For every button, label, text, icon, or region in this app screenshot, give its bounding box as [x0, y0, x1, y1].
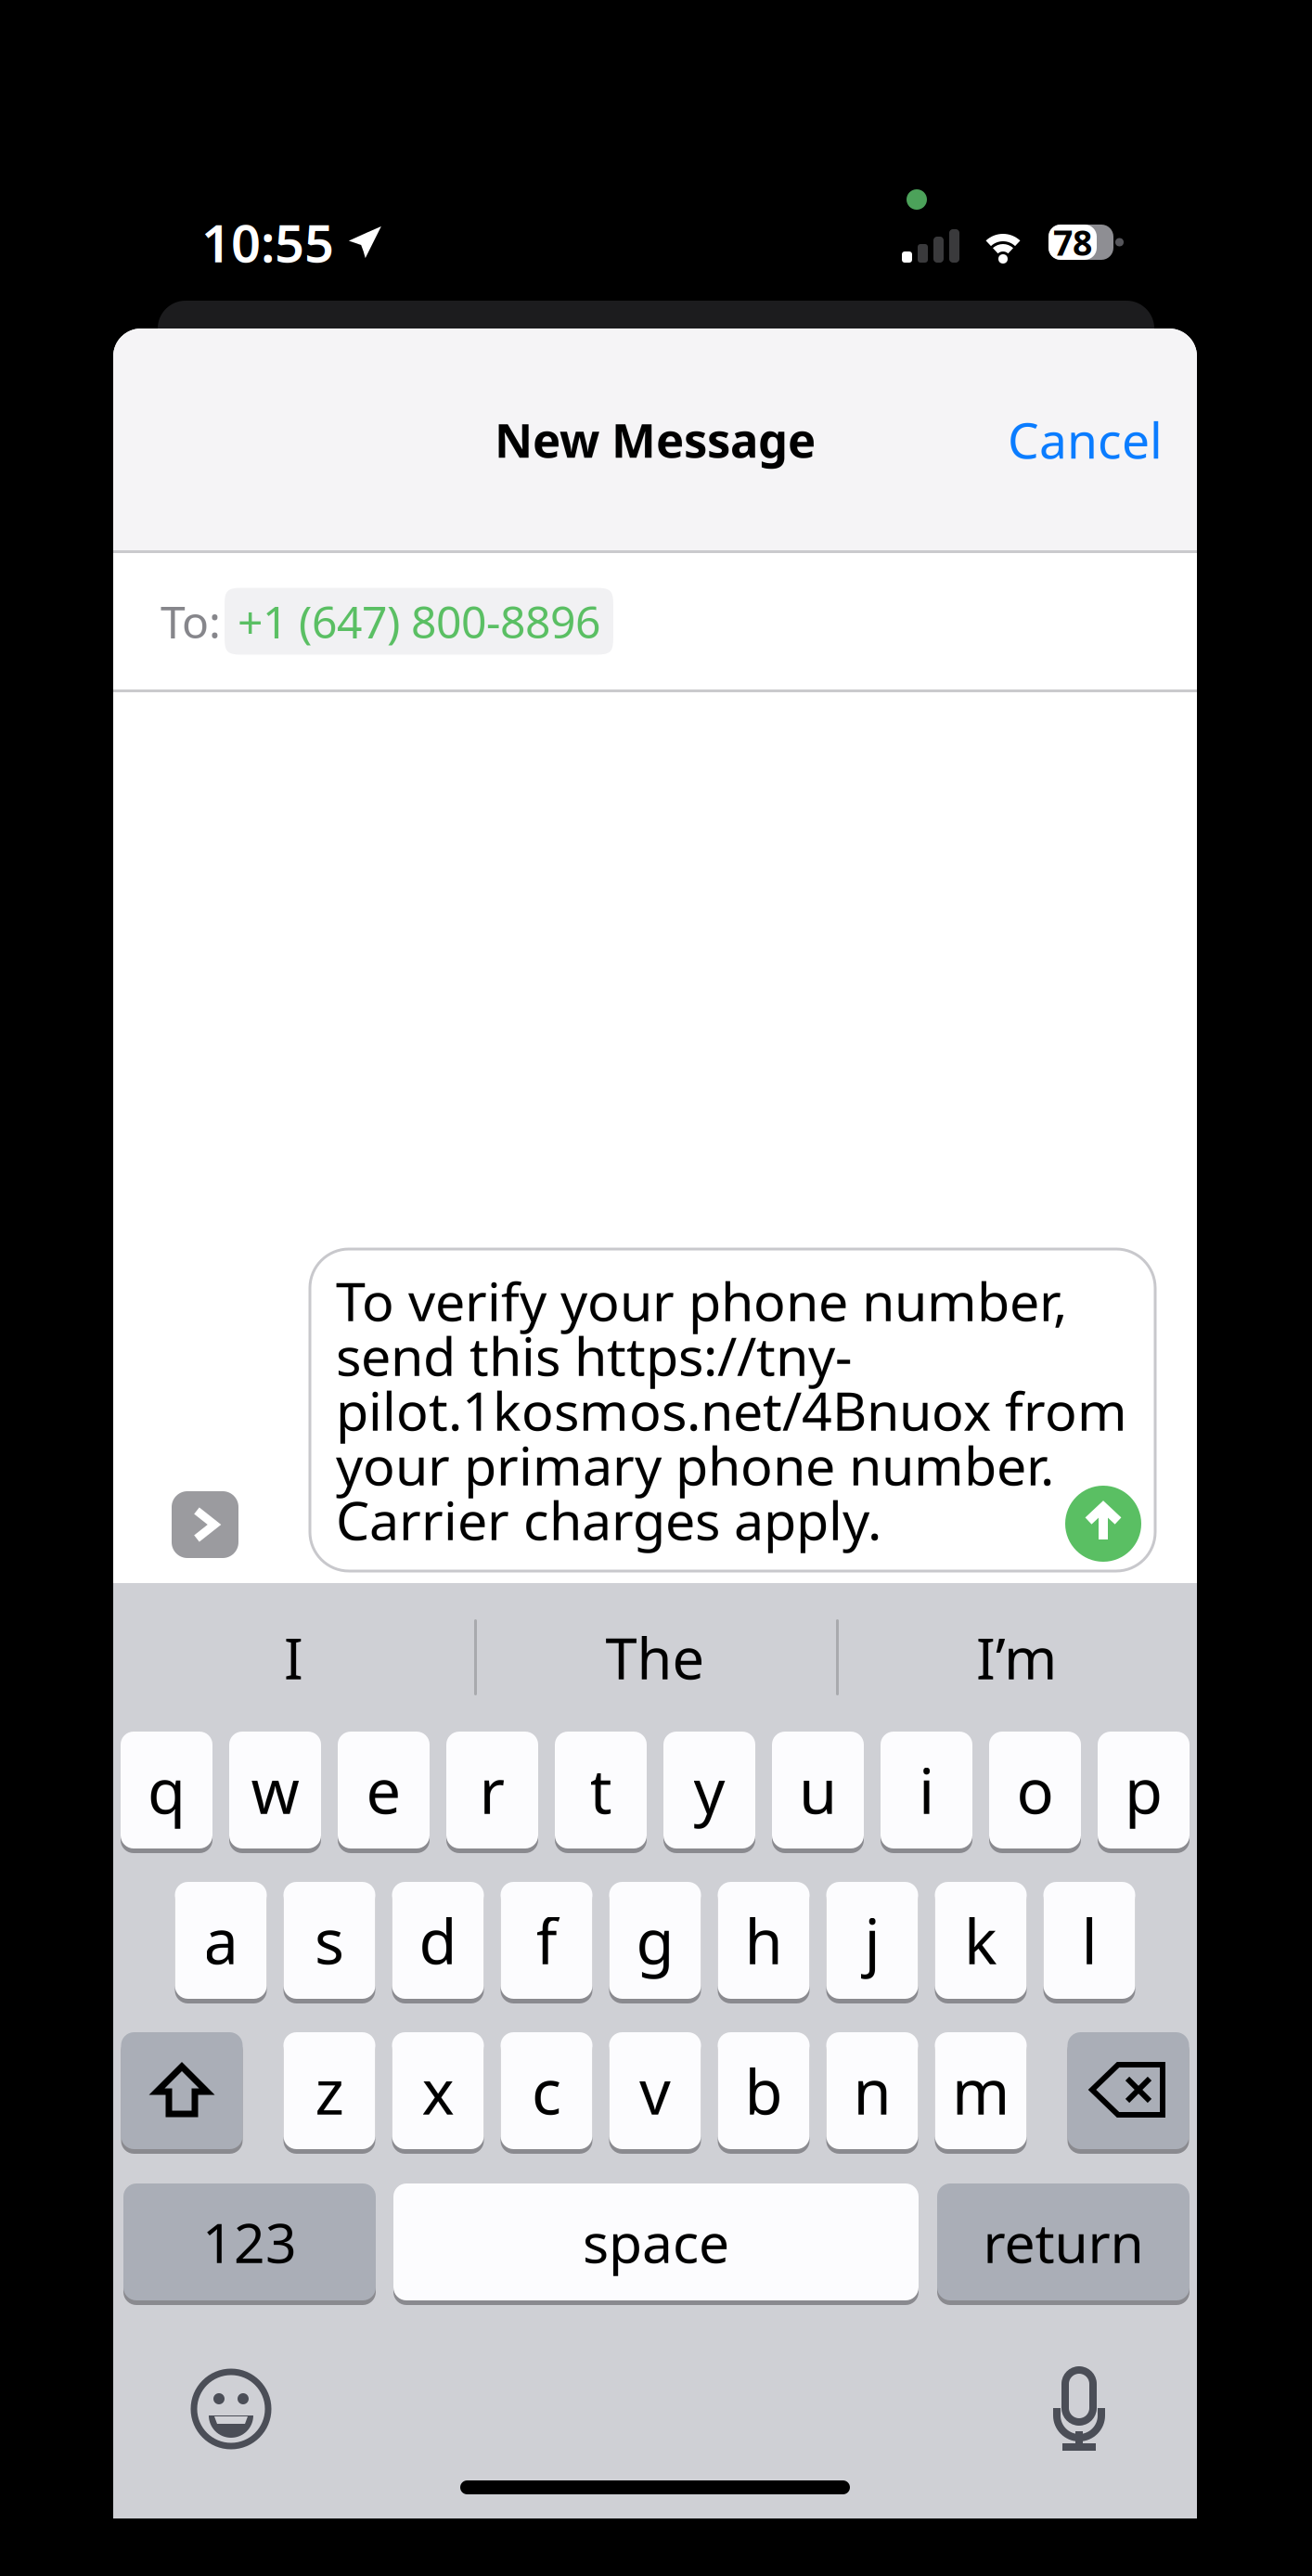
staticText: m: [952, 2050, 1010, 2132]
staticText: t: [590, 1749, 612, 1831]
button[interactable]: b: [718, 2032, 810, 2154]
staticText: I’m: [976, 1620, 1057, 1695]
staticText: +1 (647) 800-8896: [238, 592, 600, 651]
staticText: q: [148, 1749, 186, 1831]
staticText: f: [536, 1899, 557, 1981]
button[interactable]: r: [446, 1732, 538, 1853]
button[interactable]: x: [392, 2032, 484, 2154]
button[interactable]: s: [283, 1882, 375, 2003]
staticText: c: [532, 2050, 561, 2132]
staticText: 123: [202, 2206, 297, 2278]
button[interactable]: m: [935, 2032, 1027, 2154]
staticText: g: [636, 1899, 674, 1981]
button[interactable]: The: [474, 1584, 836, 1731]
button[interactable]: a: [175, 1882, 267, 2003]
button[interactable]: App drawer: [172, 1491, 238, 1558]
staticText: New Message: [495, 408, 816, 471]
button[interactable]: z: [283, 2032, 375, 2154]
button[interactable]: y: [663, 1732, 755, 1853]
staticText: send this https://tny-: [336, 1320, 852, 1391]
staticText: y: [694, 1749, 725, 1831]
button[interactable]: k: [935, 1882, 1027, 2003]
staticText: your primary phone number.: [336, 1429, 1054, 1500]
staticText: j: [864, 1899, 880, 1981]
button[interactable]: l: [1043, 1882, 1135, 2003]
button[interactable]: f: [501, 1882, 592, 2003]
staticText: The: [605, 1620, 705, 1695]
button[interactable]: Shift: [121, 2032, 243, 2154]
staticText: z: [315, 2050, 344, 2132]
button[interactable]: o: [989, 1732, 1081, 1853]
button[interactable]: c: [501, 2032, 592, 2154]
staticText: i: [919, 1749, 934, 1831]
staticText: Carrier charges apply.: [336, 1484, 881, 1555]
button[interactable]: v: [609, 2032, 701, 2154]
button[interactable]: t: [555, 1732, 647, 1853]
button[interactable]: w: [229, 1732, 321, 1853]
button[interactable]: p: [1098, 1732, 1190, 1853]
button[interactable]: Dictation: [1037, 2367, 1121, 2451]
staticText: a: [204, 1899, 238, 1981]
button[interactable]: Cancel: [989, 384, 1181, 495]
button[interactable]: g: [609, 1882, 701, 2003]
staticText: d: [419, 1899, 457, 1981]
button[interactable]: Send: [1065, 1486, 1141, 1562]
button[interactable]: q: [121, 1732, 212, 1853]
staticText: I: [284, 1620, 303, 1695]
button[interactable]: Delete: [1068, 2032, 1189, 2154]
button[interactable]: return: [937, 2183, 1190, 2305]
button[interactable]: 123: [123, 2183, 376, 2305]
button[interactable]: u: [772, 1732, 864, 1853]
staticText: 10:55: [201, 208, 334, 277]
button[interactable]: j: [826, 1882, 918, 2003]
staticText: b: [745, 2050, 783, 2132]
staticText: l: [1081, 1899, 1097, 1981]
staticText: To verify your phone number,: [336, 1265, 1067, 1336]
staticText: To:: [161, 592, 221, 651]
button[interactable]: h: [718, 1882, 810, 2003]
button[interactable]: i: [881, 1732, 972, 1853]
staticText: r: [479, 1749, 505, 1831]
staticText: w: [251, 1749, 299, 1831]
button[interactable]: n: [826, 2032, 918, 2154]
staticText: 78: [1053, 219, 1092, 265]
staticText: u: [799, 1749, 837, 1831]
staticText: o: [1016, 1749, 1054, 1831]
staticText: space: [583, 2206, 729, 2278]
button[interactable]: Emoji keyboard: [189, 2367, 273, 2451]
staticText: k: [964, 1899, 997, 1981]
button[interactable]: I: [113, 1584, 474, 1731]
button[interactable]: I’m: [836, 1584, 1197, 1731]
staticText: x: [422, 2050, 454, 2132]
staticText: s: [315, 1899, 344, 1981]
staticText: Cancel: [1008, 407, 1163, 472]
staticText: n: [853, 2050, 891, 2132]
staticText: v: [639, 2050, 671, 2132]
button[interactable]: d: [392, 1882, 484, 2003]
staticText: p: [1125, 1749, 1163, 1831]
button[interactable]: space: [393, 2183, 919, 2305]
staticText: return: [983, 2206, 1144, 2278]
button[interactable]: e: [338, 1732, 430, 1853]
staticText: e: [366, 1749, 401, 1831]
staticText: h: [745, 1899, 783, 1981]
staticText: pilot.1kosmos.net/4Bnuox from: [336, 1375, 1127, 1445]
